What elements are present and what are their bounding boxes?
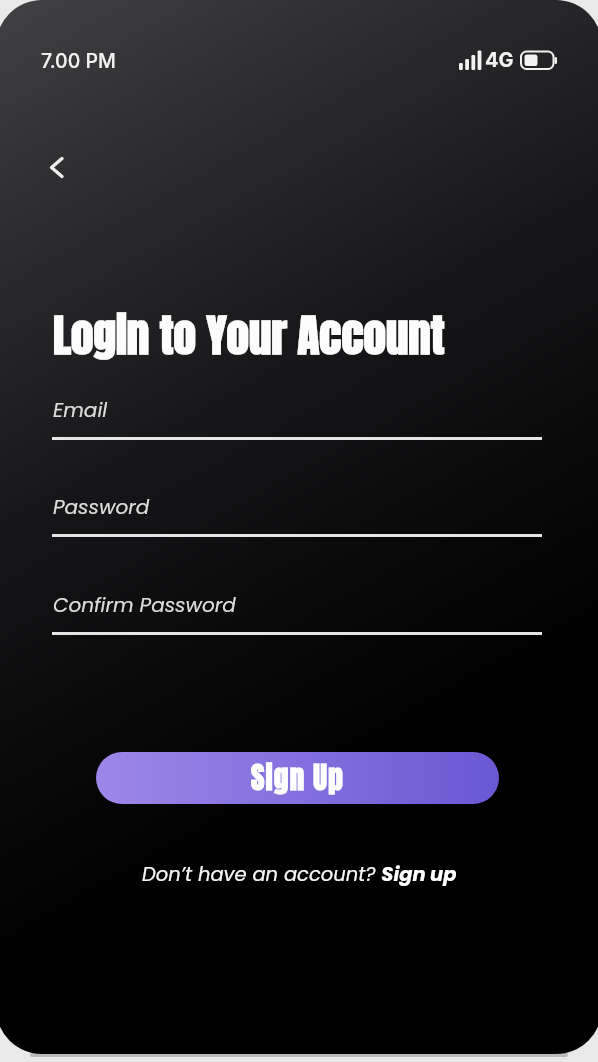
button[interactable]: Sign Up: [96, 752, 499, 804]
staticText: 4G: [485, 48, 514, 72]
button[interactable]: Password: [52, 489, 542, 540]
staticText: Email: [53, 396, 108, 424]
button[interactable]: Confirm Password: [52, 587, 542, 638]
button[interactable]: [38, 148, 76, 186]
staticText: Login to Your Account: [53, 301, 445, 369]
button[interactable]: Don’t have an account? Sign up: [0, 861, 598, 888]
staticText: Don’t have an account? Sign up: [142, 861, 457, 888]
staticText: Confirm Password: [53, 591, 236, 619]
staticText: Sign Up: [251, 756, 344, 800]
staticText: Password: [53, 493, 150, 521]
button[interactable]: Email: [52, 392, 542, 443]
staticText: 7.00 PM: [41, 49, 116, 73]
